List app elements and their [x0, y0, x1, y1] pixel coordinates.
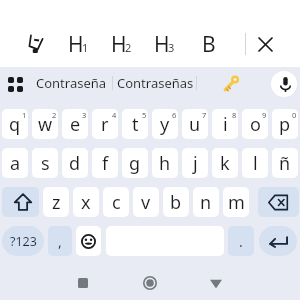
staticText: e [70, 112, 81, 137]
staticText: y [160, 112, 170, 137]
staticText: 6 [172, 110, 177, 120]
button[interactable]: g [122, 148, 148, 178]
staticText: 7 [202, 110, 207, 120]
button[interactable]: . [228, 226, 254, 256]
staticText: g [129, 151, 141, 176]
staticText: 0 [292, 110, 297, 120]
button[interactable]: e [62, 109, 88, 139]
button[interactable]: ñ [272, 148, 298, 178]
button[interactable]: r [92, 109, 118, 139]
staticText: m [228, 190, 245, 215]
button[interactable]: q [2, 109, 28, 139]
staticText: r [101, 112, 109, 137]
staticText: , [58, 232, 62, 251]
button[interactable]: Voice input [271, 71, 297, 97]
staticText: 1 [22, 110, 27, 120]
staticText: H [111, 30, 127, 59]
staticText: 8 [232, 110, 237, 120]
button[interactable]: y [152, 109, 178, 139]
button[interactable]: Recents [67, 267, 99, 299]
staticText: 3 [82, 110, 87, 120]
staticText: 9 [262, 110, 267, 120]
staticText: o [250, 112, 261, 137]
staticText: 2 [125, 40, 132, 55]
button[interactable]: v [133, 187, 159, 217]
staticText: x [81, 190, 91, 215]
staticText: q [9, 112, 21, 137]
button[interactable]: Close [252, 31, 279, 58]
button[interactable]: Password suggestion [219, 71, 243, 95]
button[interactable]: f [92, 148, 118, 178]
button[interactable]: Enter [259, 226, 297, 256]
button[interactable]: s [32, 148, 58, 178]
button[interactable]: Contraseña [30, 68, 112, 98]
staticText: Contraseña [36, 74, 107, 92]
staticText: ñ [279, 151, 291, 176]
button[interactable]: Home [134, 267, 166, 299]
staticText: 5 [142, 110, 147, 120]
button[interactable]: t [122, 109, 148, 139]
staticText: Contraseñas [117, 74, 194, 92]
button[interactable]: l [242, 148, 268, 178]
staticText: 2 [52, 110, 57, 120]
staticText: 4 [112, 110, 117, 120]
staticText: f [102, 151, 109, 176]
staticText: i [223, 112, 228, 137]
staticText: d [69, 151, 81, 176]
button[interactable]: ?123 [2, 226, 44, 256]
staticText: z [52, 190, 61, 215]
staticText: t [132, 112, 139, 137]
button[interactable]: H [150, 26, 182, 56]
button[interactable]: p [272, 109, 298, 139]
button[interactable]: w [32, 109, 58, 139]
button[interactable]: u [182, 109, 208, 139]
button[interactable]: z [43, 187, 69, 217]
staticText: l [253, 151, 258, 176]
button[interactable]: Backspace [258, 187, 299, 217]
button[interactable]: Highlight [24, 33, 44, 53]
button[interactable]: m [223, 187, 249, 217]
staticText: . [239, 232, 243, 251]
button[interactable]: k [212, 148, 238, 178]
button[interactable]: a [2, 148, 28, 178]
staticText: k [220, 151, 230, 176]
staticText: s [41, 151, 50, 176]
button[interactable]: Contraseñas [114, 68, 196, 98]
button[interactable]: c [103, 187, 129, 217]
staticText: H [154, 30, 170, 59]
staticText: p [279, 112, 291, 137]
staticText: 1 [82, 40, 89, 55]
button[interactable]: Toolbar [2, 71, 29, 98]
button[interactable]: b [163, 187, 189, 217]
button[interactable]: h [152, 148, 178, 178]
button[interactable]: , [48, 226, 72, 256]
staticText: b [170, 190, 182, 215]
button[interactable]: Shift [2, 187, 39, 217]
staticText: 3 [168, 40, 175, 55]
staticText: j [193, 151, 198, 176]
staticText: H [68, 30, 84, 59]
staticText: h [159, 151, 171, 176]
staticText: a [10, 151, 21, 176]
button[interactable]: Emoji [76, 226, 101, 256]
staticText: c [112, 190, 121, 215]
staticText: n [200, 190, 212, 215]
staticText: ?123 [10, 233, 37, 250]
button[interactable]: o [242, 109, 268, 139]
button[interactable]: H [64, 26, 96, 56]
button[interactable]: x [73, 187, 99, 217]
staticText: w [38, 112, 53, 137]
staticText: v [141, 190, 151, 215]
button[interactable]: i [212, 109, 238, 139]
button[interactable]: d [62, 148, 88, 178]
button[interactable]: Back [200, 267, 232, 299]
button[interactable]: n [193, 187, 219, 217]
button[interactable]: j [182, 148, 208, 178]
staticText: u [189, 112, 201, 137]
staticText: B [202, 30, 216, 54]
button[interactable]: H [107, 26, 139, 56]
button[interactable]: B [197, 28, 221, 52]
